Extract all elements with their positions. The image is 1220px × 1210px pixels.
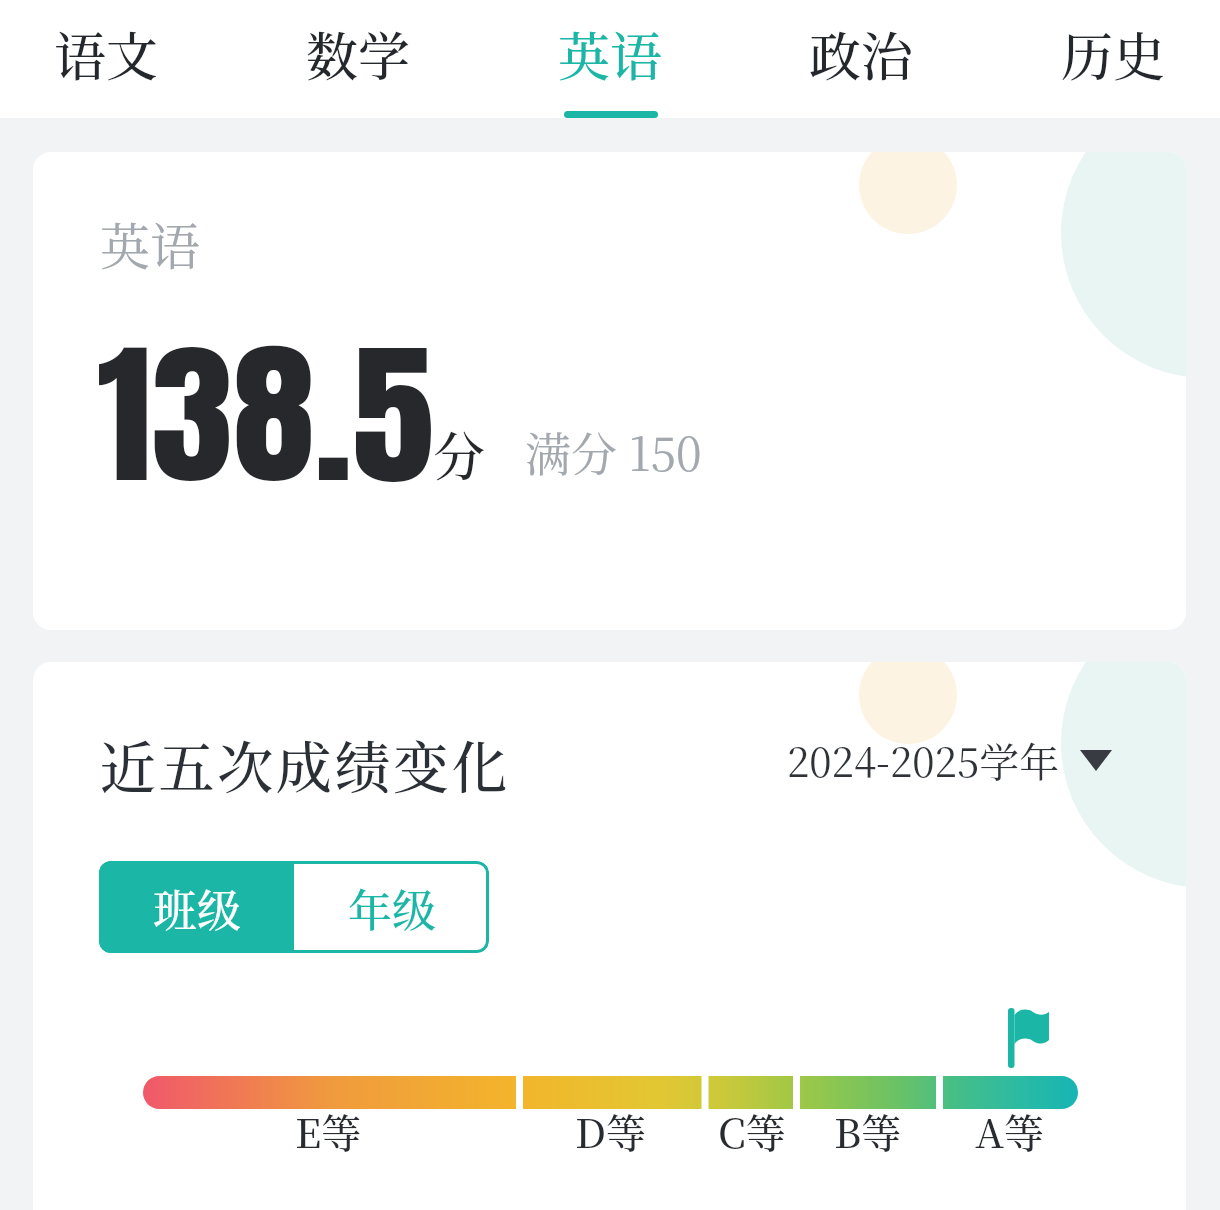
staticText: 历史 — [1061, 16, 1166, 91]
staticText: 政治 — [809, 16, 914, 91]
staticText: 班级 — [153, 876, 241, 939]
staticText: 年级 — [348, 876, 436, 939]
staticText: 138.5 — [97, 299, 434, 531]
staticText: B等 — [834, 1102, 902, 1159]
staticText: 近五次成绩变化 — [100, 724, 511, 804]
staticText: 满分 150 — [525, 418, 702, 484]
staticText: D等 — [575, 1102, 646, 1159]
staticText: E等 — [295, 1102, 362, 1159]
staticText: 分 — [433, 416, 486, 491]
button[interactable]: 2024-2025学年 — [787, 731, 1112, 788]
staticText: C等 — [718, 1102, 786, 1159]
staticText: 语文 — [54, 16, 159, 91]
button[interactable]: 数学 — [306, 0, 411, 118]
staticText: A等 — [975, 1102, 1045, 1159]
button[interactable]: 政治 — [809, 0, 914, 118]
staticText: 英语 — [100, 207, 200, 279]
button[interactable]: 历史 — [1061, 0, 1166, 118]
button[interactable]: 语文 — [54, 0, 159, 118]
staticText: 2024-2025学年 — [787, 731, 1060, 788]
button[interactable]: 英语 — [558, 0, 663, 118]
button[interactable]: 年级 — [294, 861, 489, 953]
button[interactable]: 班级 — [99, 861, 294, 953]
staticText: 数学 — [306, 16, 411, 91]
staticText: 英语 — [558, 16, 663, 91]
